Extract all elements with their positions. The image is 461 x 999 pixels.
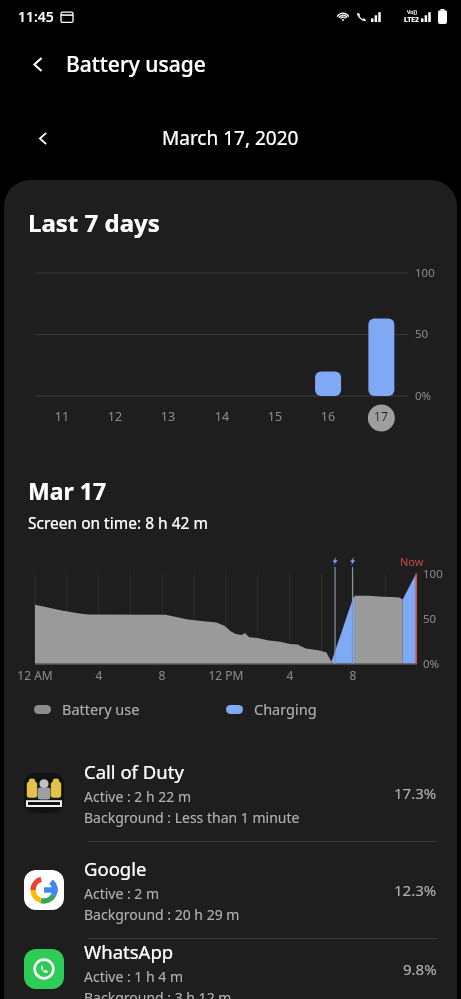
staticText: 11: [48, 408, 76, 425]
staticText: 12 AM: [10, 667, 60, 683]
staticText: 50: [415, 326, 429, 342]
staticText: 17.3%: [394, 783, 437, 803]
staticText: 16: [314, 408, 342, 425]
staticText: 11:45: [18, 7, 54, 26]
staticText: Charging: [254, 699, 317, 719]
staticText: Active : 2 m: [84, 884, 160, 903]
staticText: 14: [208, 408, 236, 425]
staticText: Active : 2 h 22 m: [84, 787, 192, 806]
button[interactable]: WhatsApp: [4, 939, 457, 999]
staticText: 100: [423, 566, 443, 582]
button[interactable]: Back: [18, 44, 58, 84]
staticText: 12: [101, 408, 129, 425]
staticText: 0%: [423, 656, 440, 672]
staticText: Call of Duty: [84, 759, 184, 784]
staticText: WhatsApp: [84, 939, 174, 964]
button[interactable]: Previous day: [24, 119, 62, 157]
staticText: Vo)): [407, 8, 417, 15]
staticText: Last 7 days: [28, 206, 160, 239]
staticText: 4: [265, 667, 315, 683]
button[interactable]: Call of Duty: [4, 745, 457, 841]
staticText: 12 PM: [201, 667, 251, 683]
staticText: 17: [367, 408, 395, 425]
staticText: Screen on time: 8 h 42 m: [28, 512, 208, 533]
staticText: Battery usage: [66, 50, 206, 79]
staticText: 8: [328, 667, 378, 683]
button[interactable]: Google: [4, 842, 457, 938]
staticText: Google: [84, 856, 147, 881]
staticText: 9.8%: [403, 959, 437, 979]
staticText: Mar 17: [28, 475, 107, 506]
staticText: Background : 20 h 29 m: [84, 905, 240, 924]
staticText: 8: [137, 667, 187, 683]
staticText: Battery use: [62, 699, 140, 719]
staticText: LTE2: [404, 15, 419, 24]
staticText: Background : 3 h 12 m: [84, 988, 232, 999]
staticText: 0%: [415, 388, 432, 404]
staticText: 100: [415, 265, 435, 281]
staticText: 12.3%: [394, 880, 437, 900]
staticText: Background : Less than 1 minute: [84, 808, 300, 827]
staticText: 4: [74, 667, 124, 683]
staticText: 15: [261, 408, 289, 425]
staticText: March 17, 2020: [162, 125, 299, 151]
staticText: 50: [423, 611, 437, 627]
staticText: Active : 1 h 4 m: [84, 967, 184, 986]
staticText: Now: [400, 554, 424, 569]
staticText: 13: [154, 408, 182, 425]
